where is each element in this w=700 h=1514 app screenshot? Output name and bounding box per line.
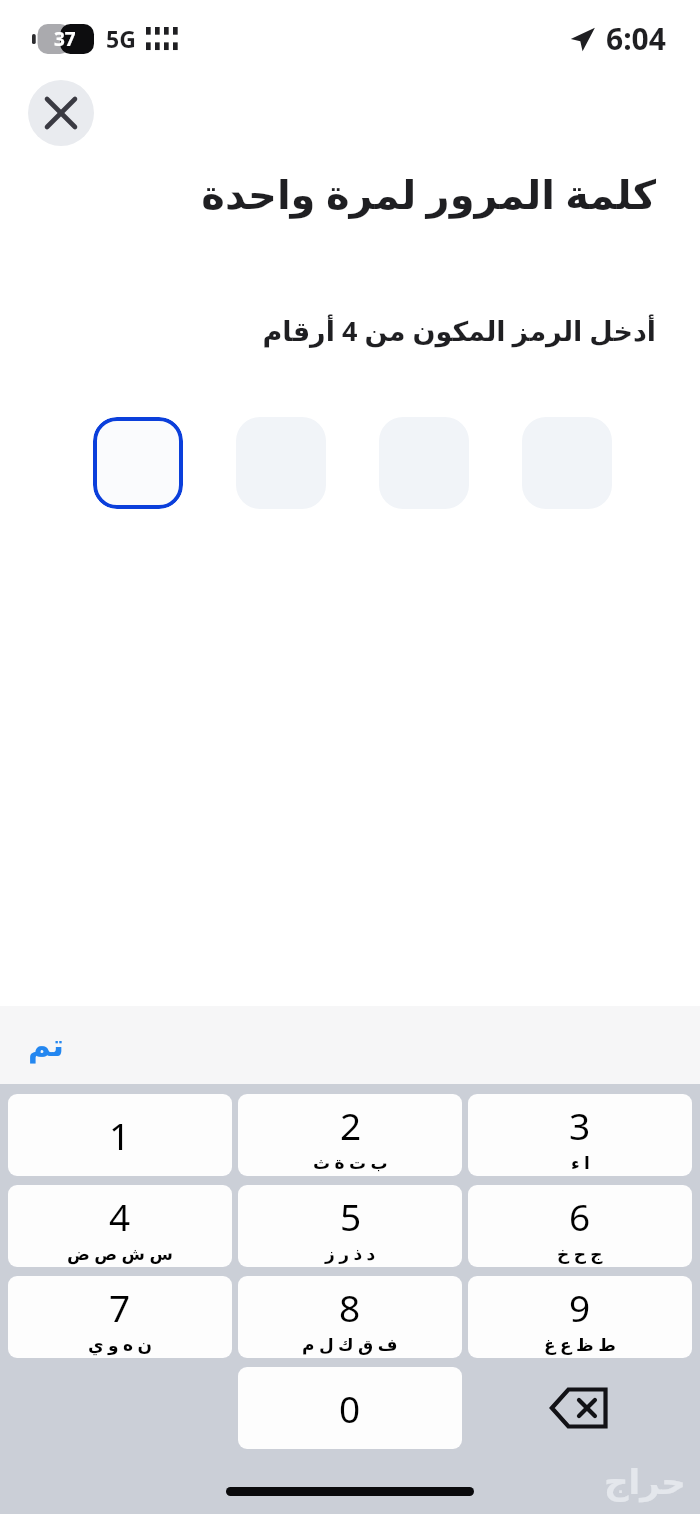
button[interactable]: 1: [8, 1094, 232, 1176]
button[interactable]: OTP digit: [236, 417, 326, 509]
staticText: ف ق ك ل م: [302, 1333, 398, 1356]
button[interactable]: 4: [8, 1185, 232, 1267]
button[interactable]: OTP digit: [379, 417, 469, 509]
staticText: د ذ ر ز: [325, 1242, 376, 1265]
button[interactable]: تم: [16, 1021, 76, 1069]
staticText: ا ء: [571, 1151, 590, 1174]
staticText: 8: [339, 1282, 361, 1332]
staticText: ج ح خ: [557, 1242, 603, 1265]
button[interactable]: 8: [238, 1276, 462, 1358]
staticText: ن ه و ي: [88, 1333, 152, 1356]
button[interactable]: 7: [8, 1276, 232, 1358]
staticText: 9: [569, 1282, 591, 1332]
staticText: 0: [339, 1383, 361, 1433]
button[interactable]: 9: [468, 1276, 692, 1358]
staticText: كلمة المرور لمرة واحدة: [44, 166, 656, 220]
staticText: 7: [109, 1282, 131, 1332]
button[interactable]: Close: [28, 80, 94, 146]
staticText: 1: [109, 1110, 131, 1160]
staticText: س ش ص ض: [67, 1242, 173, 1265]
staticText: ط ظ ع غ: [544, 1333, 616, 1356]
staticText: 3: [569, 1100, 591, 1150]
button[interactable]: 5: [238, 1185, 462, 1267]
button[interactable]: 6: [468, 1185, 692, 1267]
button[interactable]: 3: [468, 1094, 692, 1176]
staticText: 5G: [106, 23, 136, 54]
button[interactable]: 0: [238, 1367, 462, 1449]
button[interactable]: 2: [238, 1094, 462, 1176]
staticText: 5: [340, 1191, 362, 1241]
button[interactable]: OTP digit: [93, 417, 183, 509]
staticText: تم: [28, 1027, 64, 1063]
staticText: 37: [54, 26, 76, 52]
staticText: ب ت ة ث: [313, 1151, 388, 1174]
staticText: أدخل الرمز المكون من 4 أرقام: [44, 312, 656, 349]
staticText: 6: [569, 1191, 591, 1241]
staticText: حراج: [604, 1462, 686, 1502]
button[interactable]: Backspace: [468, 1367, 692, 1449]
button[interactable]: OTP digit: [522, 417, 612, 509]
staticText: 6:04: [606, 18, 666, 59]
staticText: 4: [109, 1191, 131, 1241]
staticText: 2: [340, 1100, 362, 1150]
